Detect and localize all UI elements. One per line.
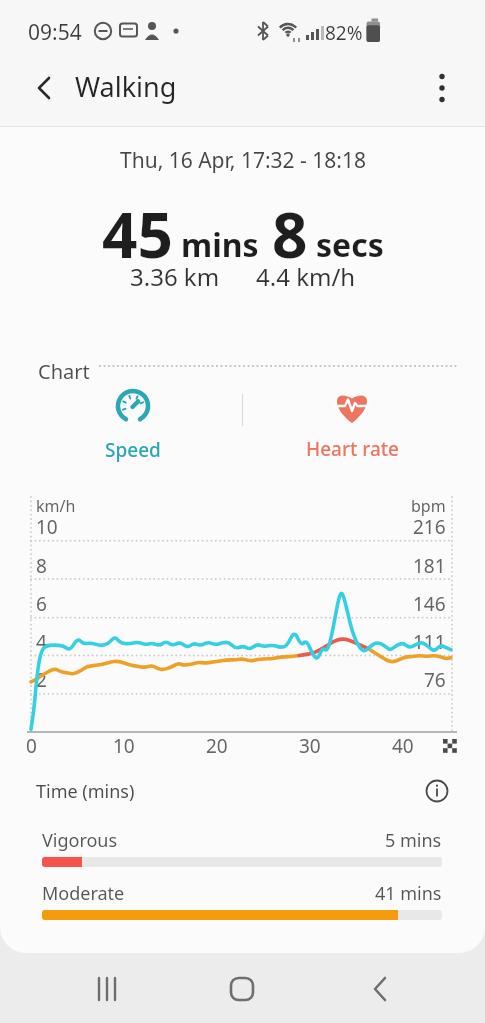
button[interactable] bbox=[348, 957, 412, 1021]
staticText: 20 bbox=[206, 733, 228, 759]
staticText: 10 bbox=[36, 514, 58, 540]
staticText: 09:54 bbox=[28, 18, 82, 47]
staticText: 30 bbox=[299, 733, 321, 759]
staticText: 4 bbox=[36, 629, 47, 655]
staticText: 82% bbox=[325, 20, 363, 46]
staticText: 45 bbox=[102, 192, 173, 276]
staticText: 0 bbox=[26, 733, 37, 759]
staticText: 8 bbox=[36, 553, 47, 579]
staticText: Thu, 16 Apr, 17:32 - 18:18 bbox=[120, 146, 366, 175]
staticText: bpm bbox=[411, 495, 446, 517]
staticText: 2 bbox=[36, 667, 47, 693]
button[interactable] bbox=[420, 774, 454, 808]
button[interactable]: Speed bbox=[83, 386, 183, 463]
staticText: 41 mins bbox=[375, 881, 442, 906]
staticText: 8 bbox=[272, 192, 308, 276]
staticText: 111 bbox=[413, 629, 446, 655]
staticText: Time (mins) bbox=[36, 779, 135, 804]
button[interactable] bbox=[20, 64, 68, 112]
staticText: 216 bbox=[413, 514, 446, 540]
button[interactable]: Heart rate bbox=[296, 386, 408, 462]
staticText: 5 mins bbox=[385, 828, 442, 853]
staticText: Moderate bbox=[42, 881, 125, 906]
staticText: 10 bbox=[113, 733, 135, 759]
staticText: 6 bbox=[36, 591, 47, 617]
staticText: km/h bbox=[36, 495, 76, 517]
staticText: Chart bbox=[38, 358, 90, 385]
button[interactable] bbox=[418, 64, 466, 112]
staticText: 181 bbox=[413, 553, 446, 579]
staticText: 4.4 km/h bbox=[256, 260, 356, 293]
staticText: Walking bbox=[75, 68, 177, 105]
staticText: 146 bbox=[413, 591, 446, 617]
staticText: 3.36 km bbox=[130, 260, 220, 293]
staticText: secs bbox=[316, 223, 384, 267]
staticText: mins bbox=[181, 223, 259, 267]
staticText: 40 bbox=[392, 733, 414, 759]
staticText: Speed bbox=[105, 437, 161, 463]
staticText: 76 bbox=[424, 667, 446, 693]
button[interactable] bbox=[210, 957, 274, 1021]
staticText: Vigorous bbox=[42, 828, 118, 853]
button[interactable] bbox=[75, 957, 139, 1021]
staticText: Heart rate bbox=[306, 436, 399, 462]
